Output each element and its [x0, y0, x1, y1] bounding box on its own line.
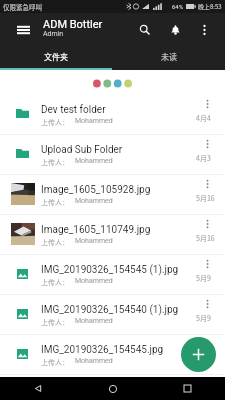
staticText: 64%: [172, 3, 184, 10]
staticText: IMG_20190326_154545.jpg: [41, 344, 164, 356]
button[interactable]: More: [201, 298, 213, 309]
button[interactable]: Home: [75, 377, 150, 400]
button[interactable]: Recents: [150, 377, 225, 400]
button[interactable]: More: [201, 338, 213, 349]
staticText: 仅限紧急呼叫: [3, 2, 42, 11]
staticText: 5月16: [196, 193, 215, 203]
staticText: 5月9: [196, 313, 211, 323]
staticText: Admin: [43, 30, 64, 38]
staticText: Mohammed: [75, 357, 113, 365]
button[interactable]: Add: [181, 337, 216, 372]
staticText: Upload Sub Folder: [41, 144, 123, 156]
button[interactable]: Image_1605_110749.jpg: [0, 215, 225, 255]
staticText: Mohammed: [75, 117, 113, 125]
staticText: Dev test folder: [41, 104, 106, 116]
staticText: Image_1605_105928.jpg: [41, 184, 151, 196]
staticText: IMG_20190326_154540 (1).jpg: [41, 304, 179, 316]
staticText: 4月3: [196, 153, 211, 163]
button[interactable]: IMG_20190326_154545 (1).jpg: [0, 255, 225, 295]
button[interactable]: IMG_20190326_154540 (1).jpg: [0, 295, 225, 335]
staticText: 上传人：: [41, 237, 69, 247]
button[interactable]: Image_1605_105928.jpg: [0, 175, 225, 215]
staticText: 上传人：: [41, 317, 69, 327]
staticText: Mohammed: [75, 157, 113, 165]
staticText: 文件夹: [44, 51, 68, 63]
staticText: 上传人：: [41, 357, 69, 367]
button[interactable]: Dev test folder: [0, 95, 225, 135]
staticText: Mohammed: [75, 317, 113, 325]
staticText: 上传人：: [41, 277, 69, 287]
staticText: 上传人：: [41, 197, 69, 207]
staticText: IMG_20190326_154545 (1).jpg: [41, 264, 179, 276]
staticText: 上传人：: [41, 157, 69, 167]
staticText: 5月9: [196, 273, 211, 283]
staticText: Mohammed: [75, 197, 113, 205]
staticText: 晚上8:53: [198, 2, 222, 11]
button[interactable]: More options: [192, 13, 217, 46]
button[interactable]: 文件夹: [0, 46, 112, 68]
button[interactable]: Menu: [9, 13, 37, 46]
button[interactable]: More: [201, 138, 213, 149]
button[interactable]: More: [201, 98, 213, 109]
staticText: Mohammed: [75, 237, 113, 245]
staticText: Image_1605_110749.jpg: [41, 224, 151, 236]
staticText: 上传人：: [41, 117, 69, 127]
button[interactable]: Upload Sub Folder: [0, 135, 225, 175]
button[interactable]: More: [201, 218, 213, 229]
button[interactable]: IMG_20190326_154545.jpg: [0, 335, 225, 375]
staticText: 未读: [161, 51, 177, 63]
staticText: Mohammed: [75, 277, 113, 285]
button[interactable]: Back: [0, 377, 75, 400]
button[interactable]: 未读: [112, 46, 225, 68]
button[interactable]: More: [201, 178, 213, 189]
staticText: 5月16: [196, 233, 215, 243]
button[interactable]: Notifications: [161, 13, 189, 46]
staticText: ADM Bottler: [43, 18, 103, 31]
button[interactable]: More: [201, 258, 213, 269]
button[interactable]: Search: [130, 13, 159, 46]
staticText: 4月4: [196, 113, 211, 123]
staticText: 5月9: [196, 353, 211, 363]
